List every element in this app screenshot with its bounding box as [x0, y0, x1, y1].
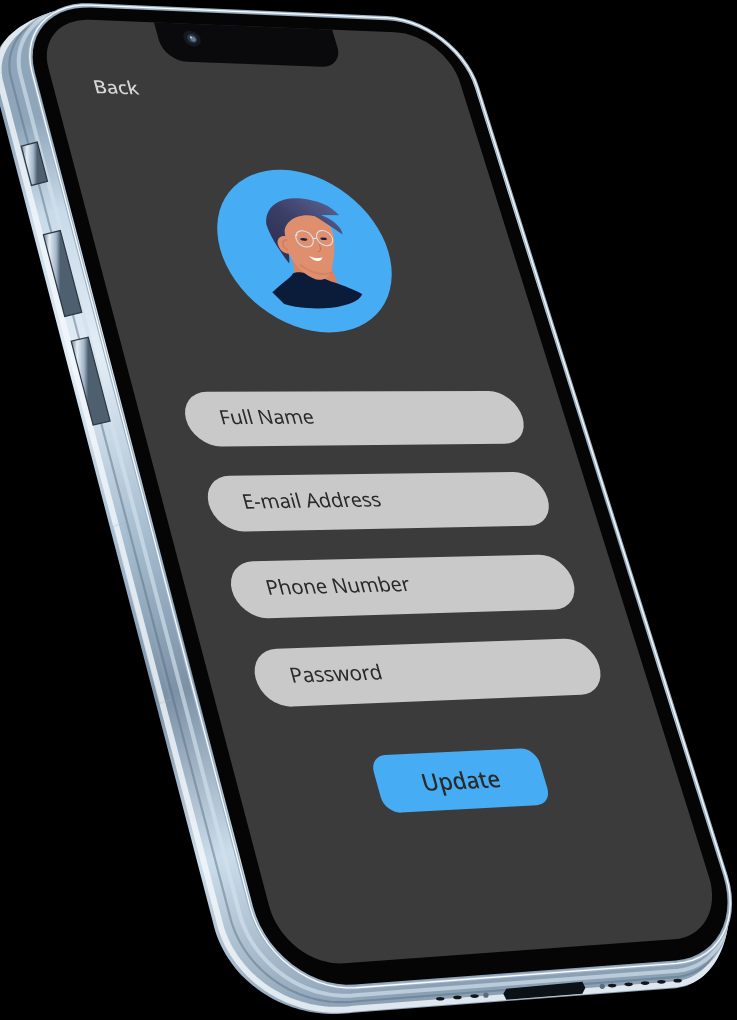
button[interactable]: Edit profile screen — [0, 0, 737, 1020]
